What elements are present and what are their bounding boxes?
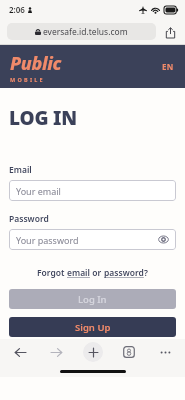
staticText: Your password bbox=[16, 234, 79, 246]
button[interactable]: Your email bbox=[9, 180, 176, 201]
staticText: Password bbox=[9, 213, 49, 225]
staticText: password bbox=[104, 267, 144, 279]
staticText: eversafe.id.telus.com bbox=[43, 26, 128, 38]
staticText: Log In bbox=[78, 293, 107, 306]
staticText: Your email bbox=[16, 185, 61, 197]
staticText: LOG IN bbox=[9, 105, 77, 131]
staticText: or bbox=[90, 267, 104, 279]
staticText: Forgot bbox=[37, 267, 67, 279]
button[interactable]: email bbox=[67, 267, 90, 279]
staticText: Public bbox=[10, 51, 62, 76]
button[interactable]: Sign Up bbox=[9, 317, 176, 337]
staticText: email bbox=[67, 267, 90, 279]
button[interactable]: New tab bbox=[83, 342, 103, 362]
staticText: M O B I L E bbox=[10, 76, 44, 83]
button[interactable]: Forward bbox=[46, 342, 66, 362]
staticText: EN bbox=[162, 61, 174, 72]
button[interactable]: Back bbox=[10, 342, 30, 362]
staticText: ? bbox=[144, 267, 148, 279]
button[interactable]: Share bbox=[162, 24, 178, 40]
button[interactable]: Log In bbox=[9, 289, 176, 309]
staticText: Sign Up bbox=[75, 321, 111, 334]
button[interactable]: password bbox=[104, 267, 144, 279]
button[interactable]: eversafe.id.telus.com bbox=[7, 23, 156, 40]
button[interactable]: Show password bbox=[157, 233, 170, 246]
button[interactable]: Tabs bbox=[119, 342, 139, 362]
button[interactable]: EN bbox=[162, 61, 174, 72]
button[interactable]: Your password bbox=[9, 229, 176, 250]
button[interactable]: More bbox=[155, 342, 175, 362]
staticText: Email bbox=[9, 164, 32, 176]
button[interactable]: Public Mobile home bbox=[10, 51, 62, 83]
staticText: 2:06 bbox=[9, 4, 25, 15]
